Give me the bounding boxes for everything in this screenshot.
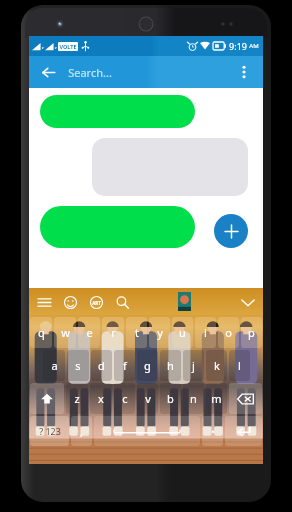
staticText: b bbox=[167, 391, 174, 406]
staticText: j bbox=[192, 358, 195, 373]
button[interactable]: s bbox=[67, 350, 89, 381]
button[interactable]: Search bbox=[112, 292, 132, 312]
button[interactable]: Shift bbox=[30, 383, 64, 414]
staticText: w bbox=[61, 325, 70, 340]
button[interactable]: p bbox=[241, 317, 262, 348]
staticText: e bbox=[86, 325, 93, 340]
button[interactable]: f bbox=[114, 350, 135, 381]
button[interactable]: Emoji bbox=[60, 292, 80, 312]
button[interactable]: a bbox=[43, 350, 65, 381]
staticText: f bbox=[123, 358, 127, 373]
button[interactable] bbox=[92, 138, 248, 196]
staticText: x bbox=[98, 391, 104, 406]
button[interactable]: g bbox=[137, 350, 158, 381]
button[interactable]: z bbox=[66, 383, 88, 414]
staticText: , bbox=[80, 424, 83, 439]
staticText: n bbox=[190, 391, 197, 406]
staticText: g bbox=[144, 358, 151, 373]
staticText: a bbox=[51, 358, 58, 373]
staticText: r bbox=[111, 325, 116, 340]
button[interactable]: Backspace bbox=[229, 383, 262, 414]
button[interactable]: Enter bbox=[225, 416, 262, 446]
button[interactable]: b bbox=[160, 383, 181, 414]
staticText: c bbox=[122, 391, 128, 406]
staticText: o bbox=[225, 325, 232, 340]
button[interactable]: t bbox=[126, 317, 147, 348]
button[interactable]: y bbox=[149, 317, 170, 348]
staticText: Search... bbox=[68, 65, 112, 80]
button[interactable] bbox=[40, 206, 195, 248]
staticText: y bbox=[157, 325, 163, 340]
staticText: u bbox=[179, 325, 186, 340]
staticText: , bbox=[42, 41, 44, 51]
staticText: s bbox=[75, 358, 81, 373]
button[interactable]: ? 123 bbox=[30, 416, 69, 446]
button[interactable]: Period bbox=[202, 416, 223, 446]
button[interactable]: , bbox=[71, 416, 92, 446]
staticText: i bbox=[204, 325, 207, 340]
button[interactable]: q bbox=[30, 317, 52, 348]
staticText: k bbox=[214, 358, 220, 373]
button[interactable]: Back bbox=[35, 59, 61, 85]
button[interactable]: d bbox=[91, 350, 112, 381]
staticText: m bbox=[211, 391, 222, 406]
staticText: VOLTE bbox=[59, 43, 77, 50]
button[interactable]: x bbox=[90, 383, 112, 414]
button[interactable]: i bbox=[195, 317, 216, 348]
button[interactable]: Space bbox=[94, 416, 200, 446]
button[interactable]: v bbox=[137, 383, 158, 414]
button[interactable]: Theme preview bbox=[178, 292, 191, 311]
button[interactable]: n bbox=[183, 383, 204, 414]
staticText: 9:19 bbox=[229, 40, 247, 52]
staticText: z bbox=[74, 391, 80, 406]
staticText: ? 123 bbox=[39, 425, 61, 437]
staticText: t bbox=[135, 325, 139, 340]
button[interactable]: Art stickers bbox=[86, 292, 106, 312]
staticText: p bbox=[248, 325, 255, 340]
staticText: ART bbox=[92, 300, 101, 306]
button[interactable]: Menu bbox=[34, 292, 54, 312]
button[interactable] bbox=[40, 95, 195, 128]
staticText: q bbox=[38, 325, 45, 340]
staticText: , bbox=[55, 41, 57, 51]
button[interactable]: Collapse keyboard bbox=[238, 292, 258, 312]
button[interactable]: h bbox=[160, 350, 181, 381]
button[interactable]: e bbox=[78, 317, 100, 348]
button[interactable]: k bbox=[206, 350, 227, 381]
button[interactable]: More options bbox=[231, 59, 257, 85]
button[interactable]: j bbox=[183, 350, 204, 381]
button[interactable]: m bbox=[206, 383, 227, 414]
staticText: l bbox=[238, 358, 241, 373]
staticText: v bbox=[145, 391, 151, 406]
button[interactable]: Add bbox=[214, 214, 248, 248]
staticText: h bbox=[167, 358, 174, 373]
staticText: d bbox=[98, 358, 105, 373]
staticText: AM bbox=[249, 42, 259, 50]
button[interactable]: u bbox=[172, 317, 193, 348]
button[interactable]: r bbox=[102, 317, 124, 348]
button[interactable]: l bbox=[229, 350, 250, 381]
button[interactable]: c bbox=[114, 383, 135, 414]
button[interactable]: o bbox=[218, 317, 239, 348]
button[interactable]: w bbox=[54, 317, 76, 348]
